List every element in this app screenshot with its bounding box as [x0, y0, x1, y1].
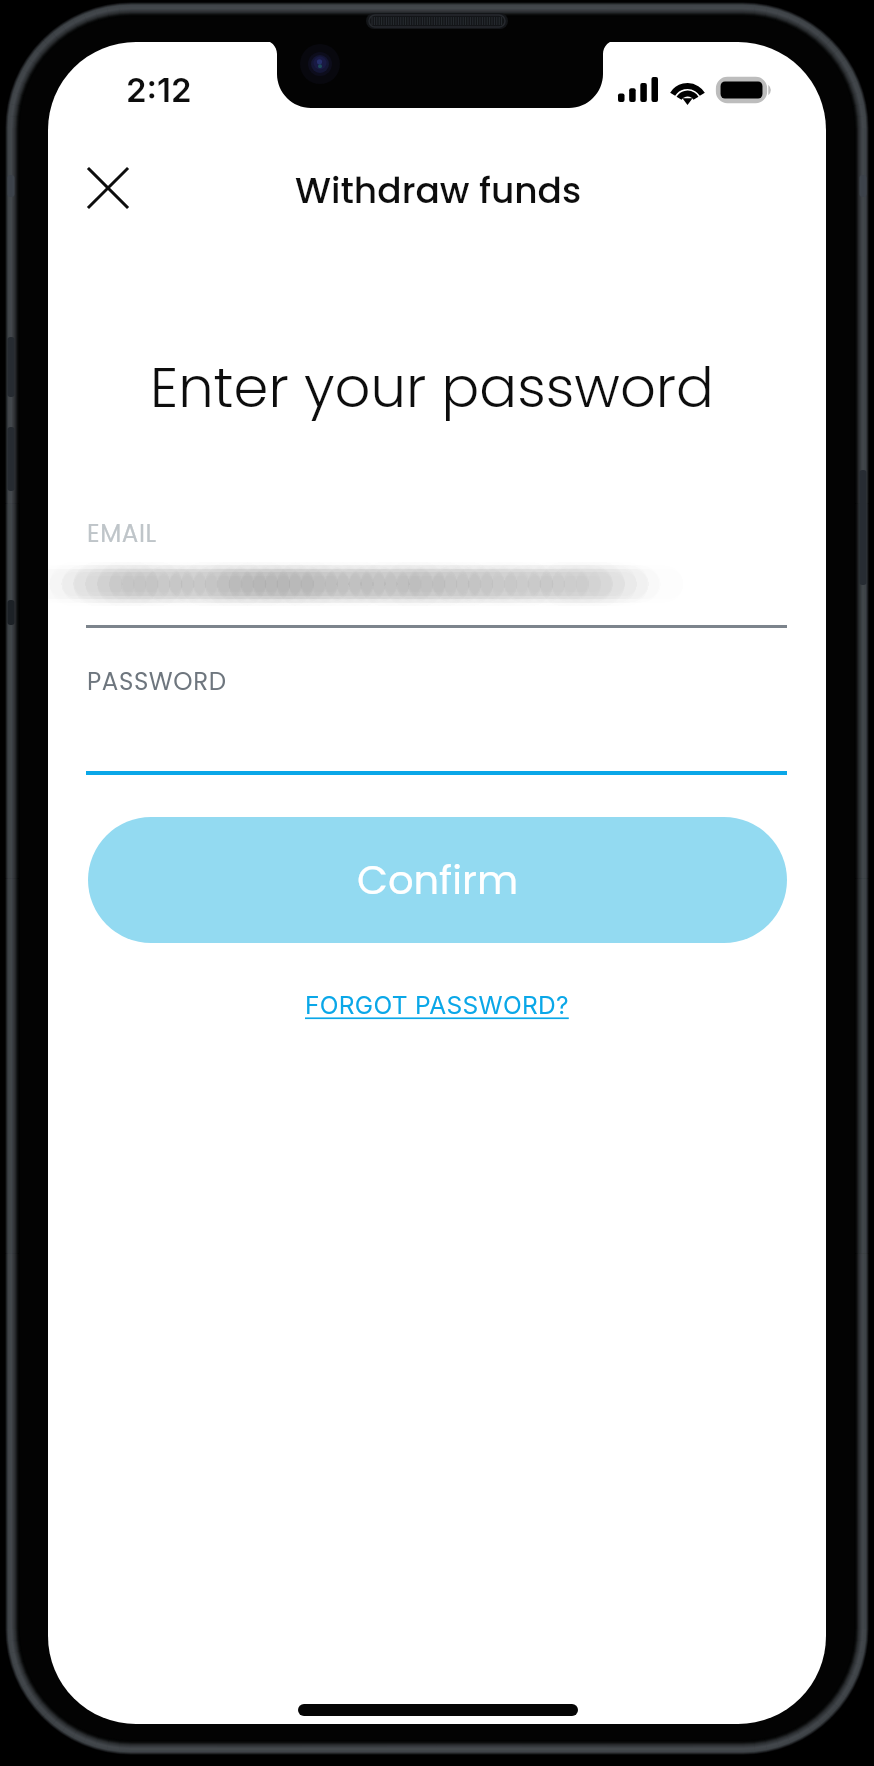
staticText: Confirm: [357, 852, 519, 908]
staticText: Withdraw funds: [295, 165, 582, 215]
staticText: FORGOT PASSWORD?: [305, 990, 569, 1020]
button[interactable]: Confirm: [88, 817, 787, 943]
staticText: PASSWORD: [87, 664, 227, 698]
staticText: EMAIL: [87, 516, 157, 550]
button[interactable]: Close: [63, 143, 153, 233]
button[interactable]: FORGOT PASSWORD?: [290, 974, 583, 1036]
staticText: 2:12: [126, 70, 192, 110]
staticText: Enter your password: [150, 348, 714, 426]
